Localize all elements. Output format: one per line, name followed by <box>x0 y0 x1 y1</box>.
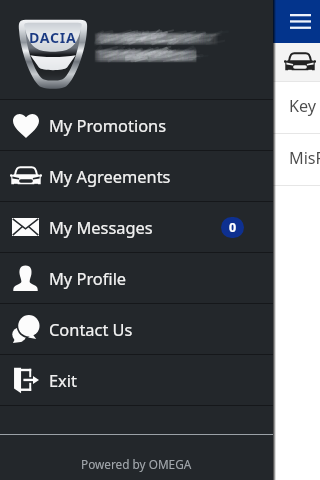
button[interactable]: My Promotions <box>0 100 273 151</box>
staticText: My Profile <box>49 267 127 289</box>
staticText: MisPl <box>289 147 320 169</box>
button[interactable]: My Messages <box>0 202 273 253</box>
button[interactable]: Contact Us <box>0 304 273 355</box>
button[interactable]: My Agreements <box>0 151 273 202</box>
button[interactable]: Exit <box>0 355 273 406</box>
staticText: My Promotions <box>49 114 167 136</box>
button[interactable]: My Profile <box>0 253 273 304</box>
staticText: Exit <box>49 369 77 391</box>
staticText: My Agreements <box>49 165 171 187</box>
staticText: Contact Us <box>49 318 133 340</box>
button[interactable]: MisPl <box>0 134 320 186</box>
staticText: Key <box>289 95 320 117</box>
staticText: DACIA <box>29 28 77 47</box>
staticText: 0 <box>229 219 237 236</box>
button[interactable]: Key <box>0 82 320 134</box>
staticText: My Messages <box>49 216 153 238</box>
button[interactable]: Open navigation menu <box>287 9 314 34</box>
staticText: Powered by OMEGA <box>81 456 192 472</box>
